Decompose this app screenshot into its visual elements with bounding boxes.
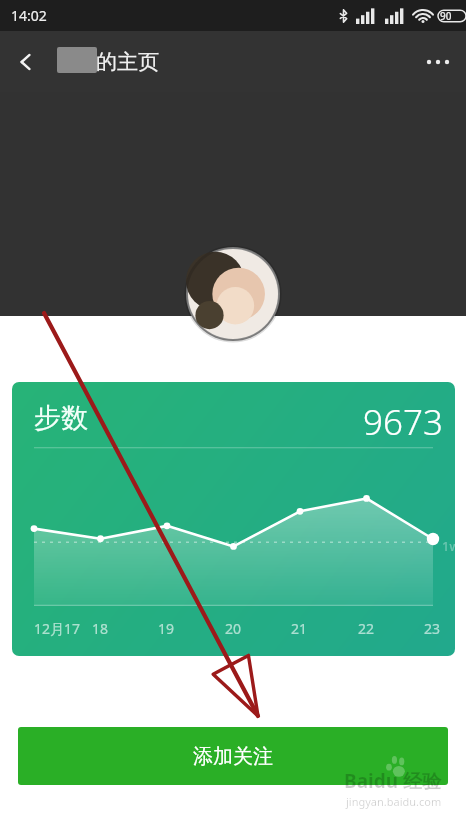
staticText: 14:02 [11,6,47,25]
button[interactable]: 添加关注 [18,727,448,785]
staticText: 18 [92,619,109,638]
staticText: 步数 [34,401,88,435]
staticText: 19 [158,619,175,638]
button[interactable]: More options [410,34,466,90]
button[interactable]: Back [0,36,52,88]
staticText: 22 [358,619,375,638]
staticText: 添加关注 [193,744,273,769]
staticText: Baidu 经验 [344,768,441,794]
staticText: 90 [440,9,452,23]
staticText: 9673 [363,398,443,446]
staticText: 21 [291,619,308,638]
staticText: 1w [442,537,455,555]
staticText: 的主页 [96,49,159,75]
staticText: 20 [225,619,242,638]
staticText: 12月17 [34,619,81,638]
staticText: jingyan.baidu.com [346,794,442,809]
button[interactable]: 步数 [12,382,455,656]
staticText: 23 [424,619,441,638]
